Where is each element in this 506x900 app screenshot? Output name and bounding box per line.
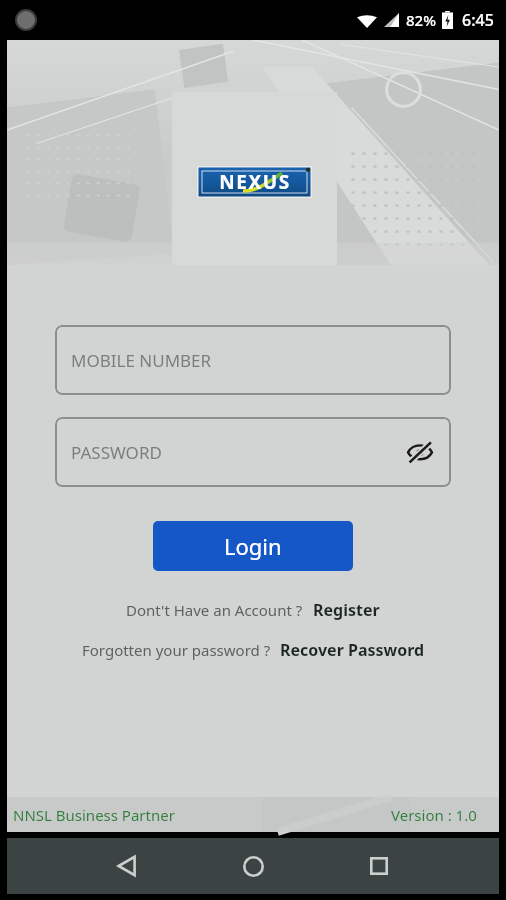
button[interactable]: Dont't Have an Account ? — [116, 596, 390, 624]
button[interactable]: Home — [229, 842, 277, 890]
staticText: PASSWORD — [71, 441, 162, 464]
staticText: Register — [313, 599, 380, 621]
staticText: Forgotten your password ? — [82, 640, 271, 660]
staticText: NNSL Business Partner — [13, 805, 175, 825]
staticText: Version : 1.0 — [391, 805, 477, 825]
button[interactable]: Show password — [403, 435, 437, 469]
staticText: NEXUS — [219, 169, 291, 195]
staticText: Login — [224, 531, 282, 561]
staticText: Dont't Have an Account ? — [126, 600, 303, 620]
staticText: 6:45 — [462, 9, 494, 31]
button[interactable]: PASSWORD — [55, 417, 451, 487]
staticText: Recover Password — [280, 639, 425, 661]
button[interactable]: Recent apps — [355, 842, 403, 890]
staticText: 82% — [406, 10, 436, 30]
button[interactable]: Login — [153, 521, 353, 571]
staticText: MOBILE NUMBER — [71, 349, 212, 372]
button[interactable]: Back — [103, 842, 151, 890]
button[interactable]: MOBILE NUMBER — [55, 325, 451, 395]
button[interactable]: Forgotten your password ? — [72, 636, 435, 664]
